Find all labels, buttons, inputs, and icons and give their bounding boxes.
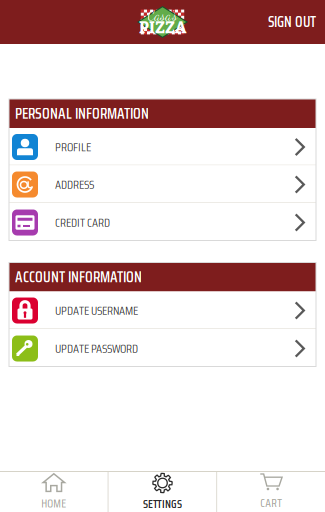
- staticText: SETTINGS: [143, 495, 182, 512]
- button[interactable]: ADDRESS: [9, 165, 316, 203]
- staticText: HOME: [41, 494, 66, 512]
- staticText: PERSONAL INFORMATION: [15, 102, 149, 125]
- button[interactable]: CART: [217, 471, 325, 512]
- staticText: ACCOUNT INFORMATION: [15, 265, 142, 289]
- button[interactable]: CREDIT CARD: [9, 203, 316, 240]
- staticText: CREDIT CARD: [55, 213, 110, 232]
- staticText: Casa's: [147, 7, 177, 23]
- staticText: CART: [260, 494, 282, 512]
- button[interactable]: SIGN OUT: [259, 0, 325, 44]
- button[interactable]: SETTINGS: [109, 471, 216, 512]
- staticText: PIZZA: [139, 18, 186, 38]
- button[interactable]: HOME: [0, 471, 108, 512]
- button[interactable]: UPDATE PASSWORD: [9, 329, 316, 366]
- staticText: UPDATE PASSWORD: [55, 339, 138, 358]
- staticText: SIGN OUT: [268, 10, 316, 34]
- staticText: UPDATE USERNAME: [55, 301, 138, 320]
- staticText: PROFILE: [55, 137, 91, 157]
- staticText: ADDRESS: [55, 175, 94, 194]
- button[interactable]: UPDATE USERNAME: [9, 291, 316, 329]
- button[interactable]: PROFILE: [9, 128, 316, 165]
